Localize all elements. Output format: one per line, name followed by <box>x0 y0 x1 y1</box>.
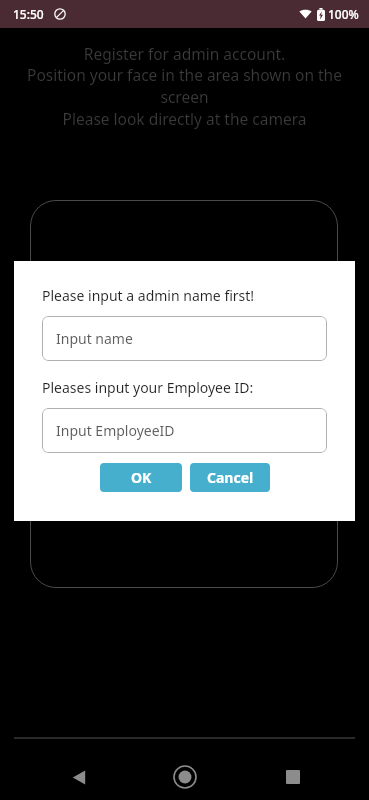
button[interactable]: Back <box>60 758 98 796</box>
staticText: 100% <box>328 6 359 22</box>
staticText: Input name <box>56 329 133 348</box>
staticText: Please input a admin name first! <box>42 286 255 305</box>
button[interactable]: Input EmployeeID <box>42 408 327 453</box>
button[interactable]: Cancel <box>190 463 270 492</box>
button[interactable]: Recent apps <box>274 758 312 796</box>
staticText: OK <box>131 468 152 487</box>
button[interactable]: OK <box>100 463 182 492</box>
button[interactable]: Input name <box>42 316 327 361</box>
staticText: 15:50 <box>13 6 44 22</box>
staticText: Input EmployeeID <box>56 421 175 440</box>
staticText: Cancel <box>207 468 254 487</box>
staticText: Pleases input your Employee ID: <box>42 378 254 397</box>
staticText: Register for admin account. Position you… <box>16 43 353 130</box>
button[interactable]: Home <box>165 757 205 797</box>
